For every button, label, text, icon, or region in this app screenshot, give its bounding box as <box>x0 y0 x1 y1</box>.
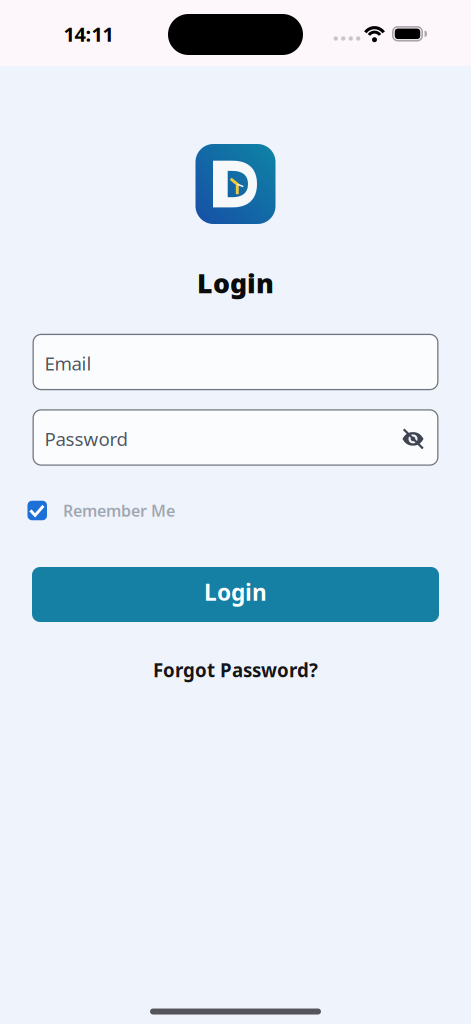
staticText: Login <box>204 577 267 607</box>
button[interactable]: Forgot Password? <box>153 658 318 682</box>
staticText: Email <box>44 351 91 376</box>
staticText: 14:11 <box>63 21 113 47</box>
staticText: Password <box>44 426 127 451</box>
staticText: Remember Me <box>63 500 175 521</box>
staticText: Login <box>197 265 274 301</box>
button[interactable]: Show password <box>401 429 424 449</box>
button[interactable]: Login <box>32 567 439 622</box>
button[interactable]: Remember Me <box>27 500 175 521</box>
staticText: Forgot Password? <box>153 658 318 682</box>
